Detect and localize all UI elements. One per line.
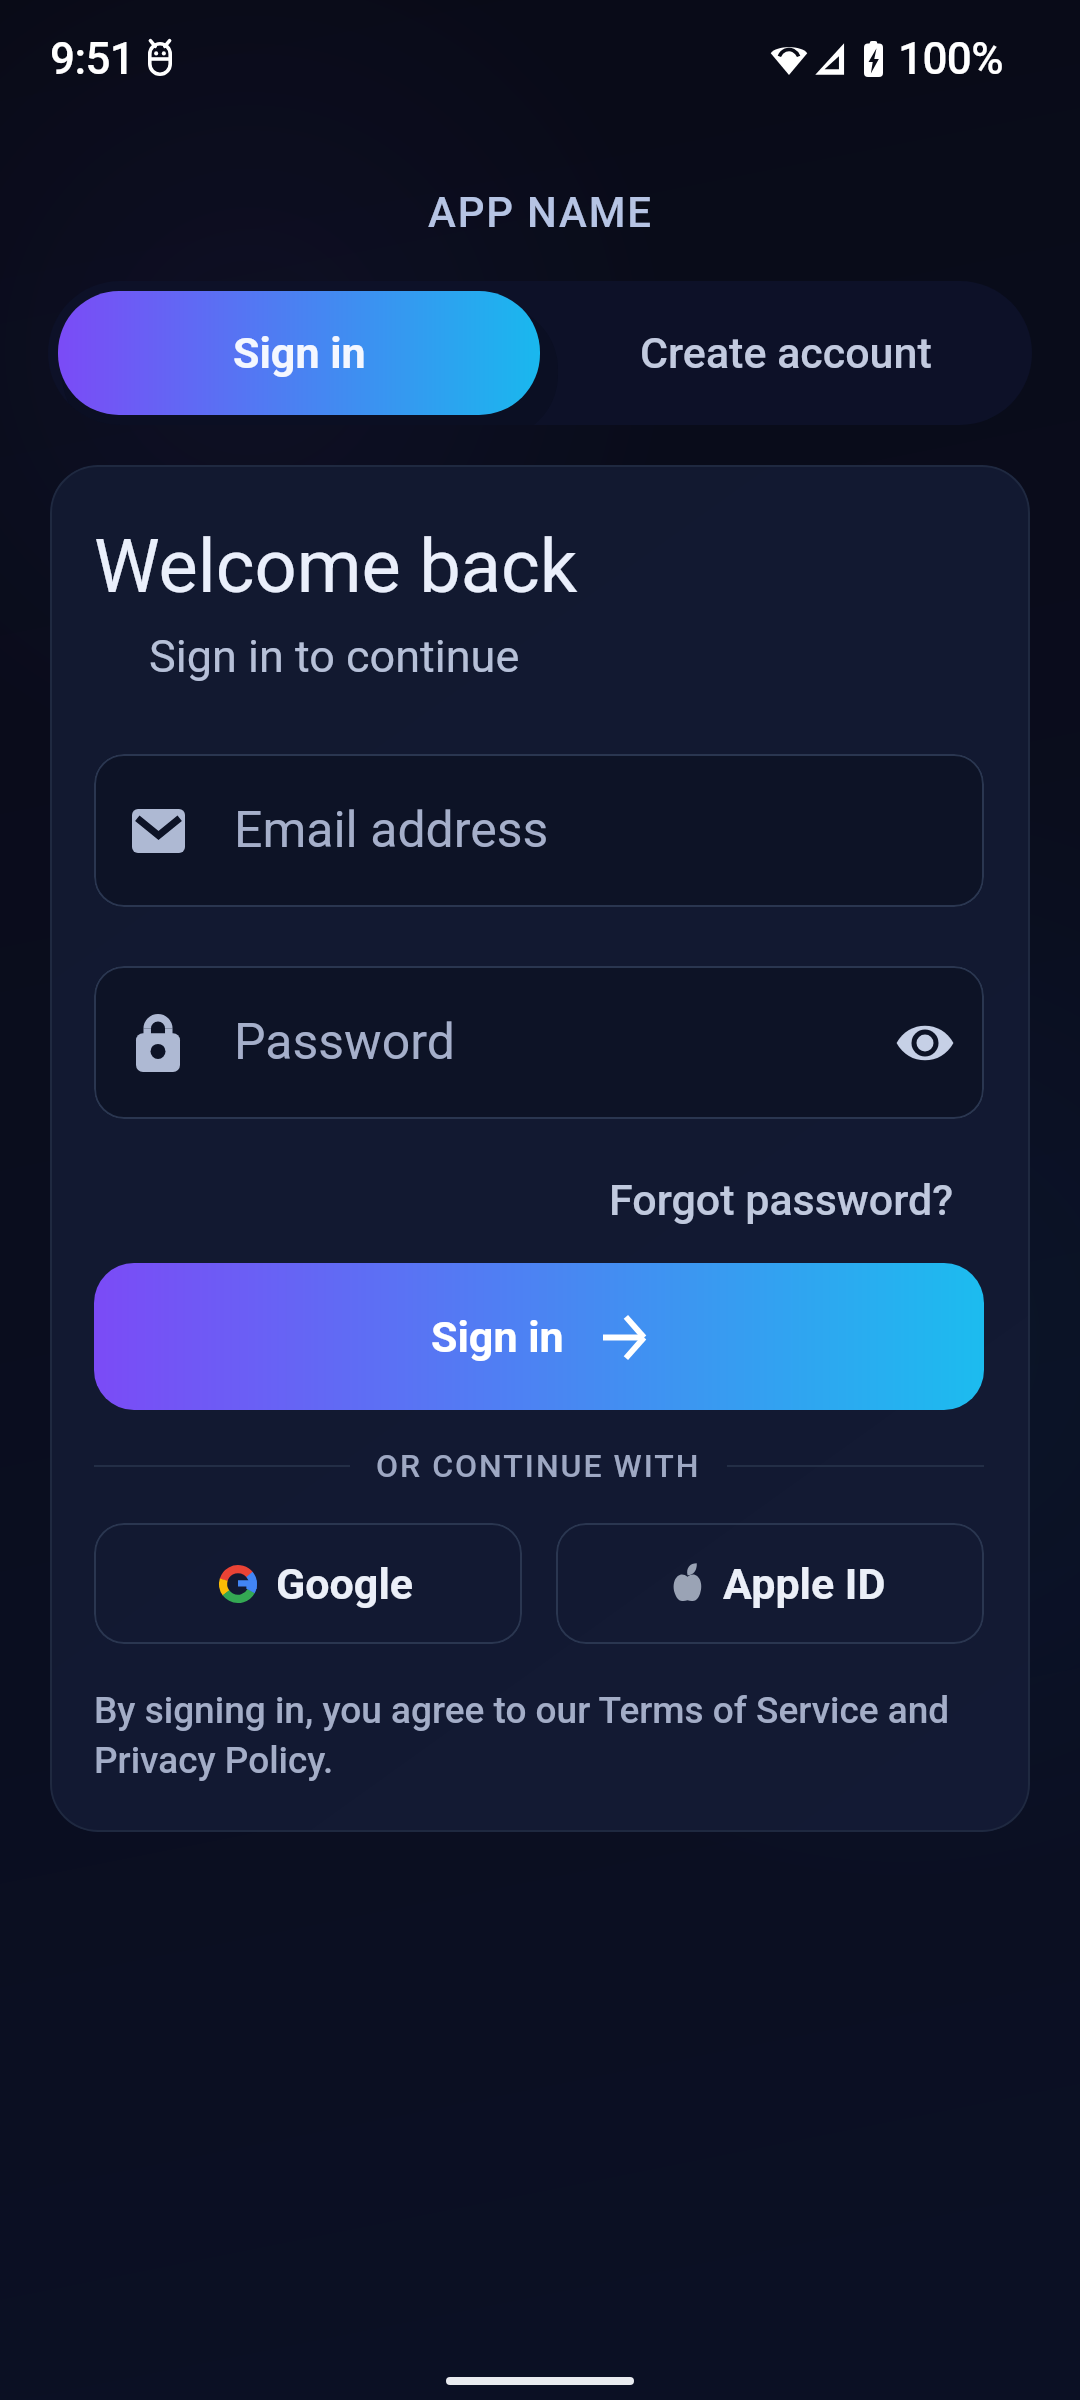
button[interactable]: Password — [94, 966, 984, 1119]
staticText: Google — [276, 1559, 414, 1609]
staticText: Sign in to continue — [149, 630, 520, 683]
button[interactable]: Show password — [882, 1000, 968, 1086]
staticText: Welcome back — [94, 523, 578, 610]
staticText: Sign in — [431, 1312, 564, 1362]
staticText: OR CONTINUE WITH — [376, 1447, 701, 1485]
staticText: Forgot password? — [609, 1175, 954, 1225]
staticText: APP NAME — [428, 188, 653, 237]
staticText: 100% — [898, 33, 1004, 85]
staticText: Sign in — [233, 328, 366, 378]
staticText: By signing in, you agree to our Terms of… — [94, 1689, 994, 1782]
button[interactable]: Google — [94, 1523, 522, 1644]
button[interactable]: Sign in — [58, 291, 540, 415]
staticText: Password — [234, 1013, 455, 1072]
button[interactable]: Email address — [94, 754, 984, 907]
button[interactable]: Forgot password? — [605, 1171, 958, 1229]
button[interactable]: Sign in — [94, 1263, 984, 1410]
staticText: Create account — [640, 328, 932, 378]
button[interactable]: Apple ID — [556, 1523, 984, 1644]
staticText: 9:51 — [50, 33, 135, 85]
staticText: Email address — [234, 801, 549, 860]
button[interactable]: Create account — [540, 281, 1032, 425]
staticText: Apple ID — [723, 1559, 886, 1609]
